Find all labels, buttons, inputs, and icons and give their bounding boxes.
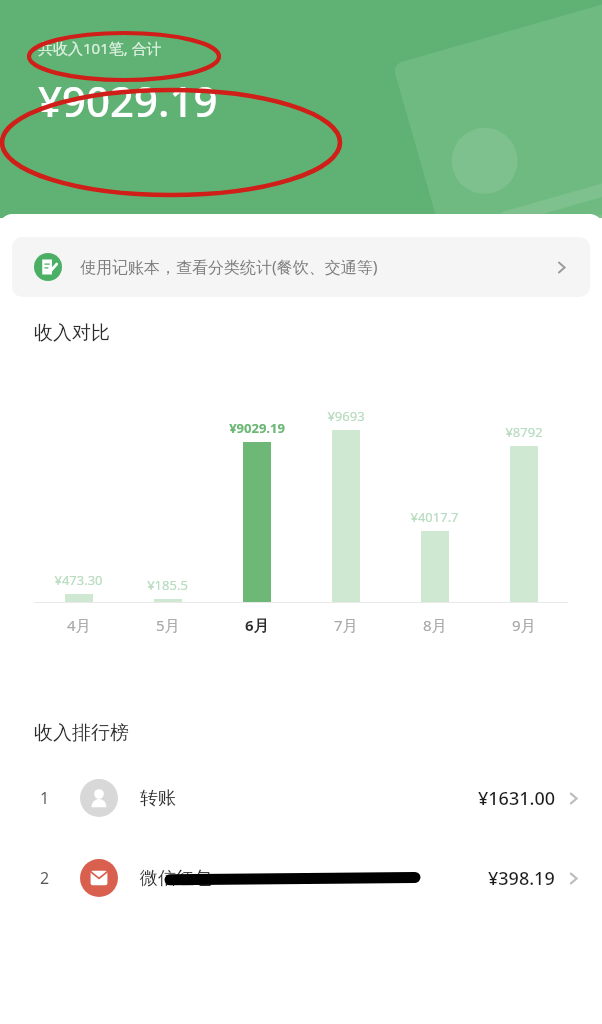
staticText: ¥1631.00 xyxy=(478,786,555,811)
staticText: 4月 xyxy=(67,615,91,635)
staticText: 收入对比 xyxy=(34,321,110,345)
staticText: 8月 xyxy=(423,615,447,635)
staticText: 1 xyxy=(40,787,50,809)
staticText: 6月 xyxy=(245,615,269,635)
staticText: ¥9029.19 xyxy=(229,419,285,437)
staticText: ¥9693 xyxy=(327,407,365,425)
staticText: 7月 xyxy=(334,615,358,635)
staticText: 转账 xyxy=(140,787,176,810)
staticText: 5月 xyxy=(156,615,180,635)
staticText: ¥4017.7 xyxy=(410,508,459,526)
staticText: ¥398.19 xyxy=(488,866,555,891)
staticText: 微信红包 xyxy=(140,867,212,890)
staticText: 收入排行榜 xyxy=(34,721,129,745)
staticText: ¥8792 xyxy=(505,423,543,441)
button[interactable]: 使用记账本，查看分类统计(餐饮、交通等) xyxy=(12,237,590,297)
other: More xyxy=(555,261,568,274)
staticText: ¥473.30 xyxy=(54,571,103,589)
other: More xyxy=(567,872,580,885)
other: More xyxy=(567,792,580,805)
staticText: 使用记账本，查看分类统计(餐饮、交通等) xyxy=(80,256,378,278)
staticText: 2 xyxy=(40,867,50,889)
staticText: 9月 xyxy=(512,615,536,635)
staticText: 共收入101笔, 合计 xyxy=(38,38,162,58)
button[interactable]: 2 xyxy=(0,859,602,897)
button[interactable]: 1 xyxy=(0,779,602,817)
staticText: ¥9029.19 xyxy=(38,72,218,129)
staticText: ¥185.5 xyxy=(147,576,188,594)
